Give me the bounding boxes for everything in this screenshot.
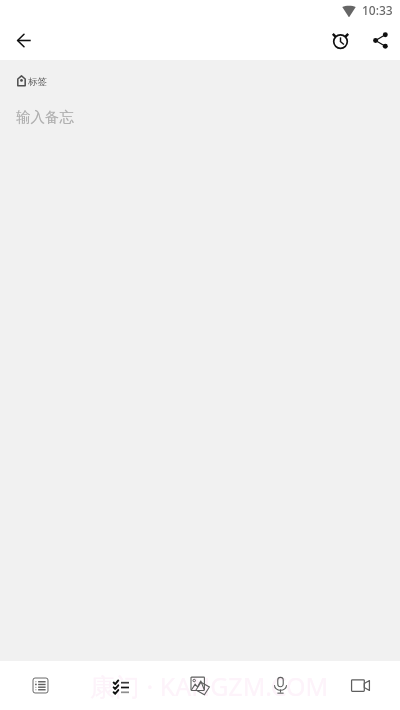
staticText: 标签 [28, 76, 47, 88]
button[interactable]: Share [365, 25, 395, 55]
button[interactable]: Image [160, 661, 240, 710]
button[interactable]: Voice recording [240, 661, 320, 710]
button[interactable]: Back [9, 25, 39, 55]
staticText: 康门 · KANGZM.COM [90, 669, 329, 703]
staticText: 输入备忘 [16, 108, 74, 126]
button[interactable]: Note list [0, 661, 80, 710]
button[interactable]: Reminder [325, 25, 355, 55]
staticText: 10:33 [362, 2, 393, 18]
button[interactable]: Checklist [80, 661, 160, 710]
button[interactable]: 标签 [17, 74, 47, 86]
button[interactable]: Video [320, 661, 400, 710]
